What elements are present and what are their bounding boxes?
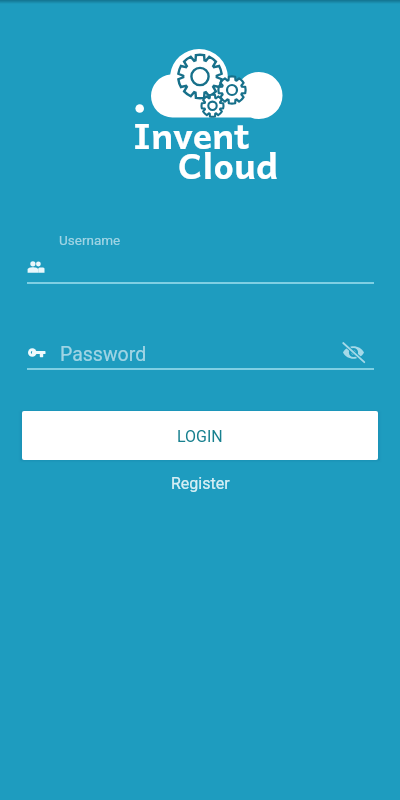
button[interactable]: Register: [157, 470, 244, 497]
staticText: Username: [59, 232, 121, 248]
button[interactable]: Show password: [334, 337, 372, 367]
button[interactable]: Username: [14, 226, 386, 286]
staticText: Invent: [133, 105, 250, 163]
button[interactable]: LOGIN: [22, 411, 378, 460]
staticText: Register: [171, 474, 230, 493]
staticText: Cloud: [178, 135, 279, 193]
button[interactable]: Password: [14, 336, 386, 374]
staticText: Password: [60, 343, 147, 366]
staticText: LOGIN: [177, 427, 223, 446]
